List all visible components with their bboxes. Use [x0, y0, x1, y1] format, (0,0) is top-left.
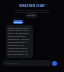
button[interactable]: hi there: [26, 13, 37, 18]
button[interactable]: Send: [52, 61, 57, 66]
staticText: forecast: [14, 21, 23, 24]
staticText: Ask about forecasts, storms and conditio…: [3, 8, 61, 14]
button[interactable]: Ask anything: [3, 60, 51, 66]
staticText: hi there: [27, 14, 36, 17]
staticText: Ask anything: [5, 62, 19, 65]
button[interactable]: forecast: [13, 20, 23, 24]
staticText: Today will be partly cloudy with a high …: [8, 26, 31, 57]
button[interactable]: Today will be partly cloudy with a high …: [6, 25, 33, 58]
staticText: WEATHER CHAT: [0, 3, 64, 8]
